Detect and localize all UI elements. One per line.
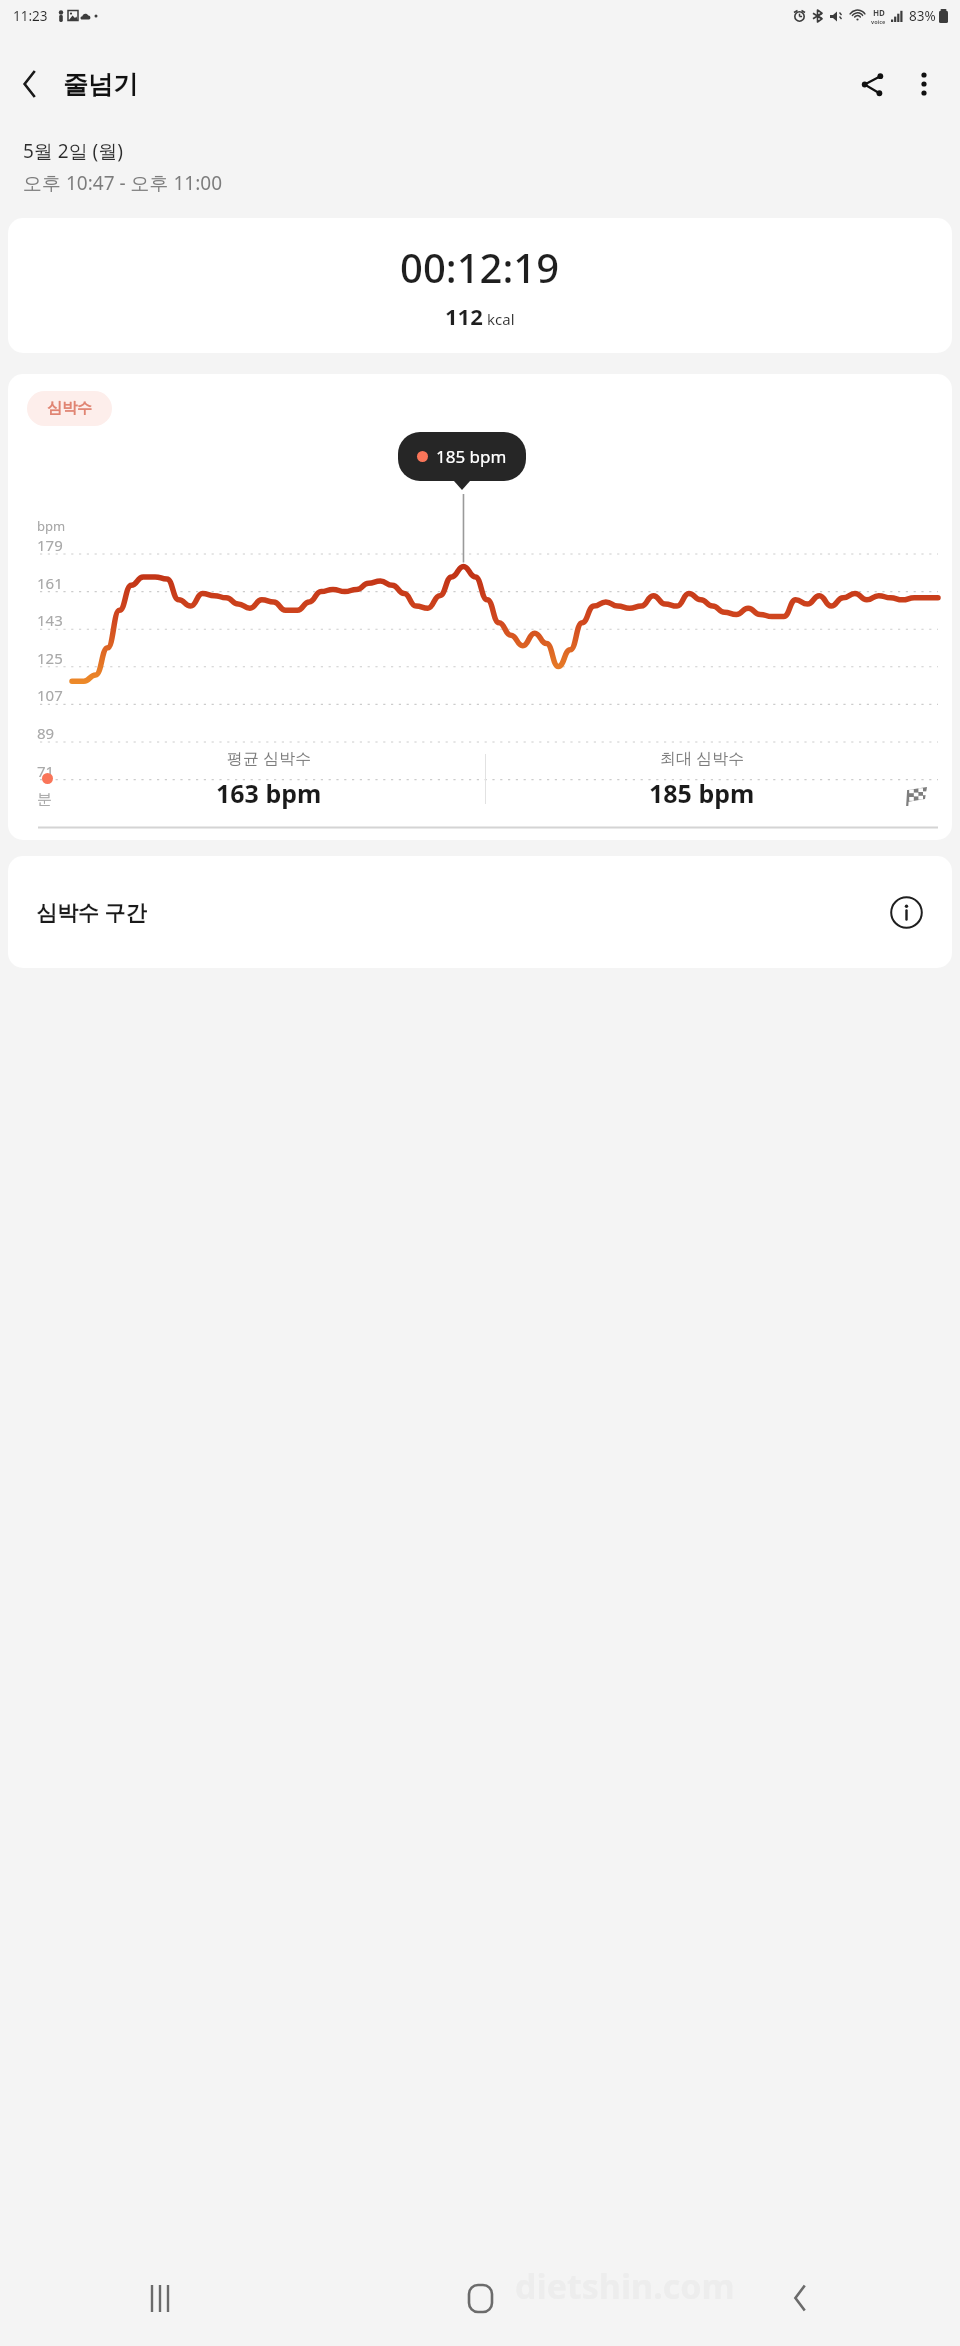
button[interactable]: More options: [898, 58, 950, 110]
button[interactable]: 심박수 구간: [8, 856, 952, 968]
staticText: 심박수 구간: [36, 898, 147, 927]
staticText: 107: [37, 685, 63, 705]
button[interactable]: Info: [884, 890, 928, 934]
button[interactable]: 심박수: [27, 391, 112, 426]
staticText: 83%: [909, 7, 936, 25]
staticText: 125: [37, 648, 63, 668]
staticText: 179: [37, 535, 63, 555]
staticText: 143: [37, 610, 63, 630]
staticText: bpm: [37, 517, 66, 535]
staticText: 줄넘기: [63, 69, 138, 100]
staticText: kcal: [487, 309, 515, 329]
button[interactable]: Recent apps: [0, 2250, 320, 2346]
staticText: 185 bpm: [649, 776, 755, 810]
button[interactable]: 185 bpm: [398, 432, 526, 481]
staticText: 89: [37, 723, 55, 743]
button[interactable]: Share: [846, 58, 898, 110]
staticText: 161: [37, 573, 63, 593]
staticText: 00:12:19: [400, 240, 560, 294]
staticText: voice: [871, 18, 886, 25]
staticText: 185 bpm: [436, 445, 507, 468]
staticText: 심박수: [47, 399, 92, 418]
button[interactable]: Back: [6, 60, 54, 108]
button[interactable]: Back: [640, 2250, 960, 2346]
staticText: 평균 심박수: [227, 747, 312, 769]
staticText: 분: [37, 790, 52, 809]
button[interactable]: 00:12:19: [8, 218, 952, 353]
staticText: 오후 10:47 - 오후 11:00: [23, 170, 223, 196]
staticText: 163 bpm: [216, 776, 322, 810]
staticText: 5월 2일 (월): [23, 138, 124, 164]
staticText: HD: [873, 7, 885, 18]
staticText: 71: [37, 761, 55, 781]
button[interactable]: Home: [320, 2250, 640, 2346]
staticText: 112: [445, 301, 483, 331]
staticText: 최대 심박수: [660, 747, 745, 769]
staticText: 11:23: [13, 7, 48, 25]
